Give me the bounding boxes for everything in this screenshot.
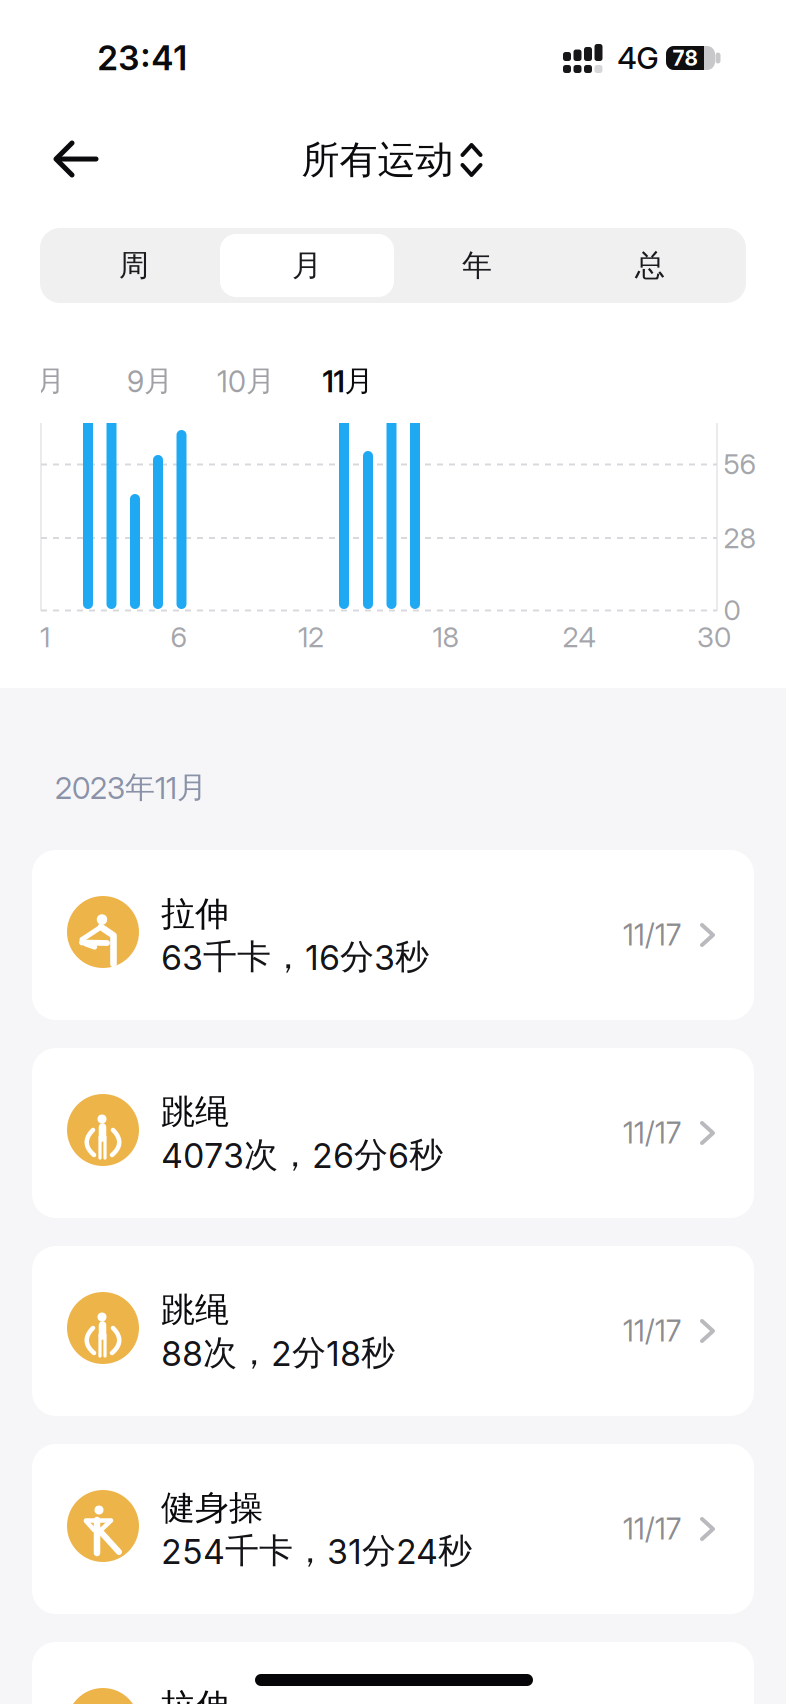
staticText: 10月 [217,363,275,399]
staticText: 4G [617,40,658,76]
staticText: 9月 [127,363,173,399]
staticText: 63千卡，16分3秒 [161,936,429,978]
staticText: 4073次，26分6秒 [161,1134,443,1176]
staticText: 18 [432,620,459,653]
staticText: 11/17 [623,1512,681,1546]
staticText: 88次，2分18秒 [161,1332,395,1374]
staticText: 跳绳 [161,1091,229,1133]
staticText: 23:41 [97,38,187,78]
staticText: 28 [723,521,756,554]
staticText: 1 [40,620,50,653]
staticText: 拉伸 [161,893,229,935]
button[interactable]: 10月 [201,351,291,411]
staticText: 总 [635,247,665,284]
button[interactable]: 健身操 [32,1444,754,1614]
button[interactable]: 周 [46,228,222,303]
staticText: 11/17 [623,918,681,952]
staticText: 6 [170,620,187,653]
staticText: 年 [462,247,492,284]
staticText: 8月 [19,363,65,399]
staticText: 11/17 [623,1314,681,1348]
staticText: 56 [723,447,756,480]
button[interactable]: 11月 [303,351,393,411]
staticText: 12 [298,620,324,653]
staticText: 78 [672,46,697,70]
button[interactable]: 9月 [105,351,195,411]
button[interactable]: 拉伸 [32,1642,754,1704]
staticText: 健身操 [161,1487,263,1529]
staticText: 11月 [322,363,373,399]
staticText: 0 [723,593,740,626]
staticText: 跳绳 [161,1289,229,1331]
button[interactable]: 拉伸 [32,850,754,1020]
staticText: 拉伸 [161,1685,229,1704]
staticText: 11/17 [623,1116,681,1150]
button[interactable]: Back [44,127,108,191]
staticText: 24 [562,620,595,653]
button[interactable]: 跳绳 [32,1048,754,1218]
staticText: 月 [292,247,322,284]
button[interactable]: 所有运动 [301,137,482,183]
button[interactable]: 跳绳 [32,1246,754,1416]
staticText: 所有运动 [301,137,453,183]
staticText: 30 [697,620,731,653]
staticText: 2023年11月 [55,769,207,806]
button[interactable]: 总 [562,228,738,303]
button[interactable]: 月 [219,228,395,303]
staticText: 周 [119,247,149,284]
staticText: 254千卡，31分24秒 [161,1530,472,1572]
button[interactable]: 年 [389,228,565,303]
